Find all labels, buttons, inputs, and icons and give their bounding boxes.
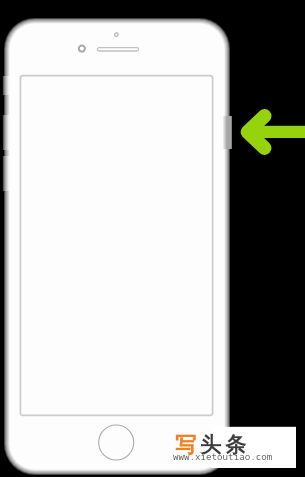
staticText: www.xietoutiao.com [173, 450, 273, 463]
staticText: 写 [173, 432, 198, 458]
staticText: 头条 [198, 432, 248, 458]
